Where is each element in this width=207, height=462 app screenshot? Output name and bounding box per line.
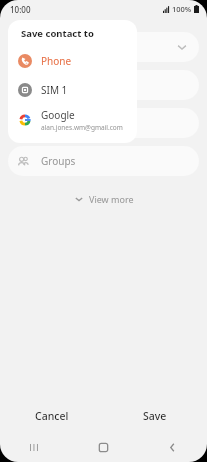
staticText: View more [89, 193, 134, 205]
staticText: Email [41, 116, 67, 130]
button[interactable]: Phone [8, 70, 199, 100]
staticText: Save [143, 409, 167, 423]
button[interactable]: Recents [0, 432, 69, 462]
staticText: 10:00 [10, 4, 31, 15]
staticText: Save contact to [21, 27, 94, 40]
staticText: 100% [172, 4, 192, 14]
staticText: Phone [41, 78, 72, 92]
button[interactable]: Expand account list [8, 32, 199, 62]
button[interactable]: Phone [8, 46, 137, 75]
button[interactable]: Home [69, 432, 138, 462]
staticText: Google [41, 108, 75, 122]
staticText: Cancel [35, 409, 69, 423]
button[interactable]: Groups [8, 146, 199, 176]
staticText: Groups [41, 154, 76, 168]
button[interactable]: Save [103, 400, 207, 432]
button[interactable]: View more [0, 189, 207, 209]
button[interactable]: Email [8, 108, 199, 138]
staticText: Phone [41, 54, 72, 68]
button[interactable]: Google [8, 104, 137, 135]
button[interactable]: Back [138, 432, 207, 462]
other: Expand account list [175, 40, 189, 54]
button[interactable]: SIM 1 [8, 75, 137, 104]
staticText: SIM 1 [41, 83, 68, 97]
button[interactable]: Cancel [0, 400, 103, 432]
staticText: alan.jones.wm@gmail.com [41, 123, 123, 132]
